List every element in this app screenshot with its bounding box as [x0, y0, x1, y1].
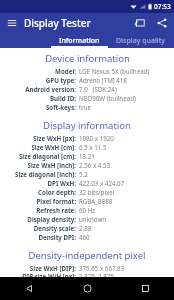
staticText: Display quality [116, 36, 166, 46]
button[interactable]: Cast screen [133, 16, 147, 30]
staticText: Size WxH [DIP]: [0, 264, 76, 272]
staticText: Display Tester [24, 16, 91, 30]
staticText: GPU type: [0, 76, 76, 84]
staticText: Refresh rate: [0, 206, 76, 214]
staticText: Size WxH [inch]: [0, 161, 76, 169]
staticText: unknown [79, 215, 107, 223]
button[interactable]: Open navigation menu [5, 16, 19, 30]
staticText: 2.88 [79, 224, 92, 232]
staticText: DIP size W/H [px]: [0, 272, 76, 277]
staticText: LGE Nexus 5X (bullhead) [79, 67, 150, 75]
staticText: 60 Hz [79, 206, 96, 214]
staticText: Color depth: [0, 188, 76, 196]
staticText: Model: [0, 67, 76, 75]
button[interactable]: Home [58, 277, 116, 300]
staticText: 32 bits/pixel [79, 188, 115, 196]
staticText: Information [59, 36, 100, 46]
button[interactable]: Display quality [108, 33, 174, 48]
staticText: 7.0 (SDK:24) [79, 85, 117, 93]
staticText: Adreno (TM) 418 [79, 76, 127, 84]
staticText: NBD90W (bullhead) [79, 94, 136, 102]
staticText: 6.5 x 11.5 [79, 143, 107, 151]
staticText: 2.875, 2.875 [79, 272, 114, 277]
staticText: Pixel format: [0, 197, 76, 205]
staticText: 2.56 x 4.53 [79, 161, 111, 169]
staticText: true [79, 103, 92, 111]
staticText: Display information [43, 119, 131, 132]
staticText: Build ID: [0, 94, 76, 102]
staticText: 460 [79, 233, 90, 241]
staticText: Density scale: [0, 224, 76, 232]
button[interactable]: Recent apps [116, 277, 174, 300]
staticText: 5.2 [79, 170, 88, 178]
staticText: Density DPI: [0, 233, 76, 241]
staticText: 375.65 x 667.83 [79, 264, 125, 272]
staticText: 422.03 x 424.07 [79, 179, 125, 187]
staticText: 1080 x 1920 [79, 134, 114, 142]
staticText: Size WxH [px]: [0, 134, 76, 142]
staticText: Device information [45, 52, 130, 65]
staticText: Density-independent pixel [28, 249, 146, 262]
staticText: RGBA_8888 [79, 197, 113, 205]
button[interactable]: Share [155, 16, 169, 30]
staticText: Display density: [0, 215, 76, 223]
staticText: Android version: [0, 85, 76, 93]
staticText: Size WxH [cm]: [0, 143, 76, 151]
staticText: Soft-keys: [0, 103, 76, 111]
staticText: 13.21 [79, 152, 95, 160]
staticText: Size diagonal [cm]: [0, 152, 76, 160]
staticText: Size diagonal [inch]: [0, 170, 76, 178]
button[interactable]: Back [0, 277, 58, 300]
staticText: 07:53 [154, 2, 171, 11]
button[interactable]: Information [51, 33, 108, 48]
staticText: DPI WxH: [0, 179, 76, 187]
